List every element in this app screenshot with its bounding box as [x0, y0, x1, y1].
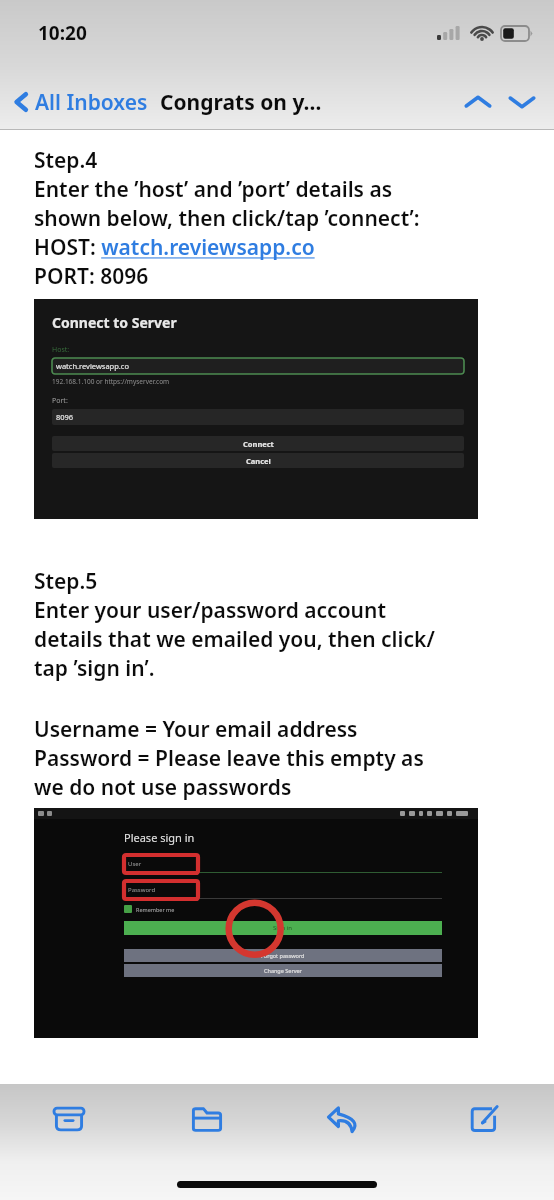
staticText: User [128, 860, 142, 868]
button[interactable]: Forgot password [124, 949, 442, 962]
button[interactable]: Compose [415, 1084, 554, 1154]
staticText: Step.5 [34, 567, 98, 596]
staticText: details that we emailed you, then click/ [34, 625, 435, 654]
staticText: 8096 [56, 412, 74, 422]
staticText: Connect to Server [52, 313, 177, 332]
staticText: 192.168.1.100 or https://myserver.com [52, 377, 170, 386]
button[interactable]: Change Server [124, 964, 442, 977]
staticText: Remember me [136, 906, 175, 913]
button[interactable]: Cancel [52, 453, 464, 468]
button[interactable]: Archive [0, 1084, 138, 1154]
staticText: Change Server [264, 967, 302, 974]
staticText: watch.reviewsapp.co [56, 361, 129, 371]
staticText: Forgot password [261, 952, 305, 959]
staticText: Please sign in [124, 830, 195, 845]
button[interactable]: All Inboxes [0, 82, 152, 122]
staticText: Sign in [273, 924, 293, 932]
button[interactable]: Next message [500, 82, 544, 122]
staticText: 10:20 [38, 20, 87, 46]
staticText: Enter the ’host’ and ’port’ details as [34, 175, 393, 204]
button[interactable]: Previous message [456, 82, 500, 122]
staticText: Port: [52, 396, 68, 406]
staticText: PORT: 8096 [34, 262, 149, 291]
staticText: Password [128, 886, 156, 894]
staticText: Username = Your email address [34, 715, 358, 744]
staticText: shown below, then click/tap ’connect’: [34, 204, 420, 233]
staticText: Password = Please leave this empty as [34, 744, 424, 773]
staticText: Connect [243, 439, 274, 449]
staticText: tap ’sign in’. [34, 654, 155, 683]
staticText: Congrats on y… [160, 88, 322, 117]
staticText: Host: [52, 345, 70, 355]
staticText: Enter your user/password account [34, 596, 386, 625]
staticText: Step.4 [34, 146, 98, 175]
button[interactable]: Reply [276, 1084, 415, 1154]
button[interactable]: Move to folder [138, 1084, 276, 1154]
staticText: All Inboxes [35, 88, 148, 116]
staticText: Cancel [246, 456, 271, 466]
button[interactable]: Sign in [124, 921, 442, 935]
button[interactable]: Connect [52, 436, 464, 451]
staticText: we do not use passwords [34, 773, 292, 802]
staticText: HOST: watch.reviewsapp.co [34, 233, 315, 262]
